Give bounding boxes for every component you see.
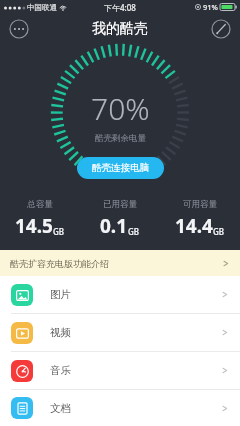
staticText: 可用容量 xyxy=(183,199,217,210)
staticText: GB xyxy=(213,226,225,237)
staticText: 图片 xyxy=(50,288,71,301)
button[interactable]: 视频 xyxy=(0,314,240,351)
staticText: 14.4 xyxy=(175,213,213,239)
staticText: 酷壳剩余电量 xyxy=(95,133,146,144)
staticText: GB xyxy=(128,226,140,237)
button[interactable]: 酷壳连接电脑 xyxy=(77,157,164,179)
button[interactable]: More options xyxy=(8,18,30,40)
staticText: 已用容量 xyxy=(103,199,137,210)
button[interactable]: 已用容量 xyxy=(80,199,160,239)
staticText: 文档 xyxy=(50,402,71,415)
staticText: 我的酷壳 xyxy=(92,20,148,38)
staticText: 中国联通 xyxy=(27,3,57,12)
staticText: 酷壳连接电脑 xyxy=(92,162,149,174)
button[interactable]: 酷壳扩容充电版功能介绍 xyxy=(0,250,240,276)
button[interactable]: 图片 xyxy=(0,276,240,313)
button[interactable]: 可用容量 xyxy=(160,199,240,239)
button[interactable]: 文档 xyxy=(0,390,240,426)
button[interactable]: Scan xyxy=(210,18,232,40)
staticText: 0.1 xyxy=(100,213,128,239)
staticText: 70% xyxy=(91,88,150,129)
staticText: 14.5 xyxy=(15,213,53,239)
button[interactable]: 音乐 xyxy=(0,352,240,389)
staticText: 总容量 xyxy=(27,199,53,210)
staticText: 音乐 xyxy=(50,364,71,377)
staticText: 下午4:08 xyxy=(104,2,136,13)
button[interactable]: 总容量 xyxy=(0,199,80,239)
staticText: 91% xyxy=(203,2,218,12)
staticText: 酷壳扩容充电版功能介绍 xyxy=(10,258,109,269)
staticText: 视频 xyxy=(50,326,71,339)
staticText: GB xyxy=(53,226,65,237)
